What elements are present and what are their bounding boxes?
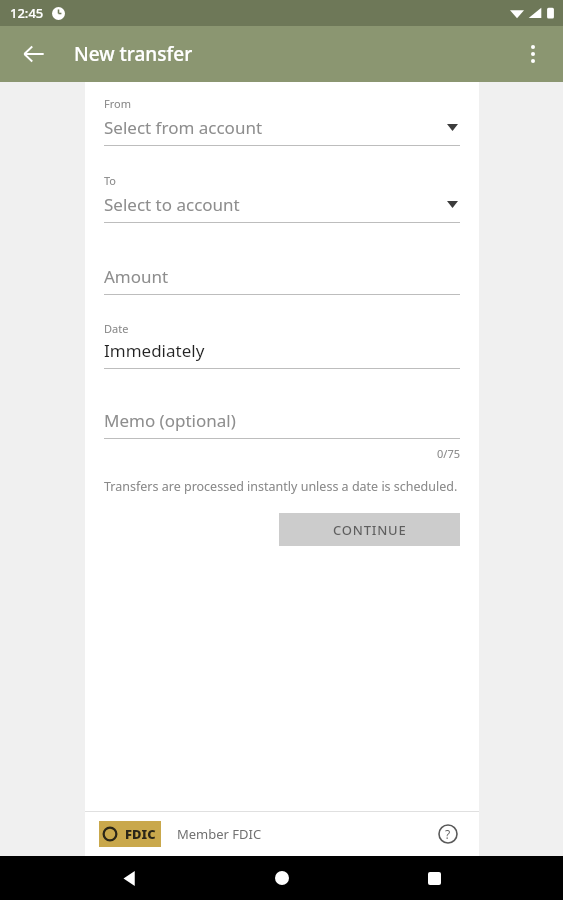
button[interactable]: Help <box>431 817 465 851</box>
staticText: Select from account <box>104 116 447 139</box>
staticText: To <box>104 173 117 188</box>
button[interactable]: Back <box>105 856 153 900</box>
staticText: 12:45 <box>10 4 44 22</box>
staticText: ? <box>445 826 451 842</box>
staticText: Member FDIC <box>177 825 431 843</box>
staticText: FDIC <box>125 825 156 843</box>
button[interactable]: Immediately <box>104 339 460 369</box>
staticText: CONTINUE <box>333 521 407 539</box>
staticText: From <box>104 96 131 111</box>
button[interactable]: CONTINUE <box>279 513 460 546</box>
button[interactable]: Home <box>258 856 306 900</box>
button[interactable]: Select from account <box>104 116 460 146</box>
staticText: Immediately <box>104 339 205 362</box>
staticText: Select to account <box>104 193 447 216</box>
staticText: New transfer <box>74 41 193 67</box>
button[interactable]: Recent apps <box>410 856 458 900</box>
staticText: 0/75 <box>104 446 460 461</box>
button[interactable]: Memo (optional) <box>104 409 460 439</box>
staticText: Amount <box>104 265 169 288</box>
button[interactable]: Select to account <box>104 193 460 223</box>
staticText: Memo (optional) <box>104 409 236 432</box>
staticText: Transfers are processed instantly unless… <box>104 478 458 495</box>
staticText: Date <box>104 321 129 336</box>
button[interactable]: Back <box>10 30 58 78</box>
button[interactable]: More options <box>509 30 557 78</box>
button[interactable]: Amount <box>104 265 460 295</box>
